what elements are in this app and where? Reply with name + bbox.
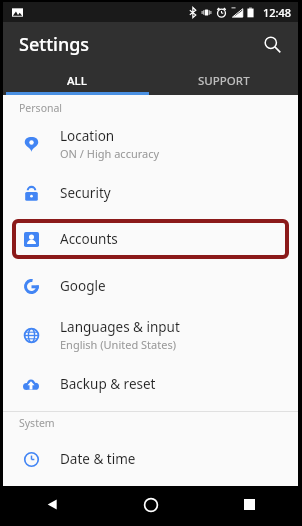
button[interactable]: ALL bbox=[3, 66, 150, 95]
staticText: SUPPORT bbox=[198, 73, 250, 89]
staticText: Languages & input bbox=[60, 318, 180, 336]
staticText: System bbox=[19, 416, 55, 430]
staticText: Settings bbox=[19, 32, 90, 57]
button[interactable]: Backup & reset bbox=[3, 359, 298, 408]
button[interactable]: Search bbox=[254, 26, 290, 62]
staticText: Date & time bbox=[60, 450, 136, 468]
button[interactable]: Languages & input bbox=[3, 310, 298, 359]
button[interactable]: Google bbox=[3, 261, 298, 310]
staticText: Security bbox=[60, 184, 111, 202]
button[interactable]: Recent apps bbox=[200, 486, 298, 523]
staticText: 12:48 bbox=[263, 5, 292, 20]
staticText: ON / High accuracy bbox=[60, 146, 160, 161]
staticText: English (United States) bbox=[60, 337, 176, 352]
staticText: Accounts bbox=[60, 230, 118, 248]
button[interactable]: SUPPORT bbox=[150, 66, 298, 95]
button[interactable]: Home bbox=[102, 486, 200, 523]
button[interactable]: Back bbox=[3, 486, 102, 523]
staticText: Personal bbox=[19, 101, 63, 115]
staticText: Google bbox=[60, 277, 106, 295]
button[interactable]: Date & time bbox=[3, 434, 298, 483]
staticText: Backup & reset bbox=[60, 375, 156, 393]
staticText: Location bbox=[60, 127, 115, 145]
button[interactable]: Location bbox=[3, 119, 298, 168]
button[interactable]: Security bbox=[3, 168, 298, 217]
staticText: ALL bbox=[67, 73, 87, 89]
